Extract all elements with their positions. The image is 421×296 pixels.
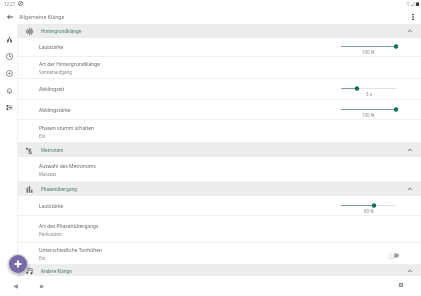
staticText: Perkussion bbox=[39, 231, 62, 237]
button[interactable]: Andere Klänge bbox=[18, 265, 421, 276]
staticText: 3 s bbox=[366, 91, 372, 97]
staticText: Phasen stumm schalten bbox=[39, 125, 94, 132]
button[interactable]: Hintergrundklänge bbox=[18, 24, 421, 38]
staticText: Art der Hintergrundklänge bbox=[39, 61, 101, 68]
staticText: Metronom bbox=[41, 147, 64, 153]
button[interactable]: Zuklappen bbox=[405, 266, 415, 276]
staticText: Art des Phasenübergangs bbox=[39, 223, 99, 230]
staticText: Lautstärke bbox=[39, 44, 64, 51]
button[interactable]: Art der Hintergrundklänge bbox=[18, 57, 421, 79]
button[interactable]: Übersicht bbox=[399, 283, 403, 287]
button[interactable]: Weitere Optionen bbox=[406, 10, 419, 23]
button[interactable]: Zuklappen bbox=[405, 184, 415, 194]
staticText: Auswahl des Metronoms bbox=[39, 163, 96, 170]
staticText: 100 % bbox=[362, 49, 375, 55]
button[interactable]: Lautstärke bbox=[18, 196, 421, 216]
button[interactable]: Navigation bbox=[1, 99, 17, 115]
staticText: Maracas bbox=[39, 171, 57, 177]
button[interactable]: Abklingstärke bbox=[18, 100, 421, 120]
staticText: Abklingstärke bbox=[39, 107, 71, 114]
staticText: Unterschiedliche Tonhöhen bbox=[39, 247, 102, 254]
staticText: Hintergrundklänge bbox=[41, 28, 82, 34]
staticText: 60 % bbox=[364, 208, 374, 214]
staticText: Andere Klänge bbox=[41, 268, 72, 274]
button[interactable]: Zuklappen bbox=[405, 145, 415, 155]
button[interactable]: Zuklappen bbox=[405, 26, 415, 36]
staticText: Phasenübergang bbox=[41, 186, 77, 192]
button[interactable]: Zurück bbox=[2, 9, 18, 24]
button[interactable]: Navigation bbox=[1, 48, 17, 64]
button[interactable]: Abklingzeit bbox=[18, 79, 421, 100]
staticText: Ein bbox=[39, 133, 46, 139]
button[interactable]: Metronom bbox=[18, 143, 421, 157]
staticText: 12:27 bbox=[4, 1, 16, 7]
button[interactable]: Navigation bbox=[1, 65, 17, 81]
button[interactable]: Startbildschirm bbox=[38, 284, 45, 289]
button[interactable]: Navigation bbox=[1, 31, 17, 47]
button[interactable]: Navigation bbox=[1, 82, 17, 98]
button[interactable]: Unterschiedliche Tonhöhen bbox=[18, 243, 421, 265]
button[interactable]: Lautstärke bbox=[18, 38, 421, 57]
staticText: Abklingzeit bbox=[39, 86, 65, 93]
button[interactable]: Phasen stumm schalten bbox=[18, 120, 421, 143]
staticText: Ein bbox=[39, 255, 46, 261]
button[interactable]: Unterschiedliche Tonhöhen umschalten bbox=[388, 252, 399, 259]
button[interactable]: Auswahl des Metronoms bbox=[18, 157, 421, 182]
button[interactable]: Phasenübergang bbox=[18, 182, 421, 196]
button[interactable]: Hinzufügen bbox=[9, 255, 27, 273]
staticText: Sonnenaufgang bbox=[39, 69, 72, 75]
button[interactable]: Zurück bbox=[13, 284, 18, 289]
button[interactable]: Art des Phasenübergangs bbox=[18, 216, 421, 243]
staticText: Allgemeine Klänge bbox=[19, 13, 65, 20]
staticText: Lautstärke bbox=[39, 203, 64, 210]
staticText: 100 % bbox=[362, 112, 375, 118]
